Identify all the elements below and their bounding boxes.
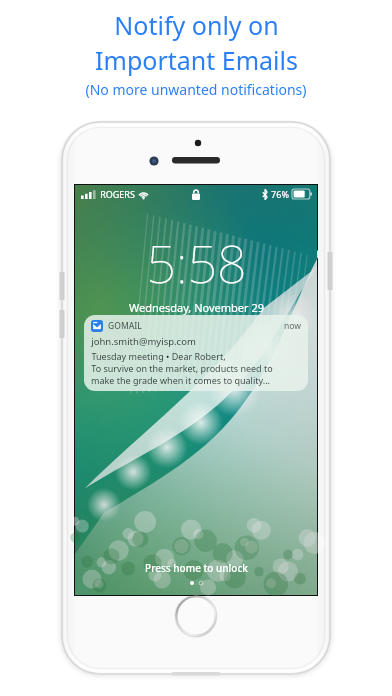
button[interactable]: GOMAIL bbox=[84, 315, 308, 391]
staticText: now bbox=[284, 320, 301, 332]
staticText: Tuesday meeting • Dear Robert, bbox=[91, 350, 226, 362]
staticText: 76% bbox=[271, 188, 289, 200]
staticText: ROGERS bbox=[100, 188, 135, 200]
staticText: (No more unwanted notifications) bbox=[85, 80, 307, 99]
staticText: Notify only on bbox=[114, 8, 279, 42]
staticText: Important Emails bbox=[95, 43, 298, 77]
staticText: GOMAIL bbox=[108, 320, 142, 332]
staticText: To survive on the market, products need … bbox=[91, 362, 273, 374]
button[interactable]: Home bbox=[174, 594, 218, 638]
staticText: john.smith@myisp.com bbox=[91, 335, 196, 348]
staticText: Press home to unlock bbox=[145, 561, 248, 575]
staticText: make the grade when it comes to quality.… bbox=[91, 374, 270, 386]
staticText: 5:58 bbox=[146, 227, 247, 298]
staticText: Wednesday, November 29 bbox=[129, 300, 264, 315]
